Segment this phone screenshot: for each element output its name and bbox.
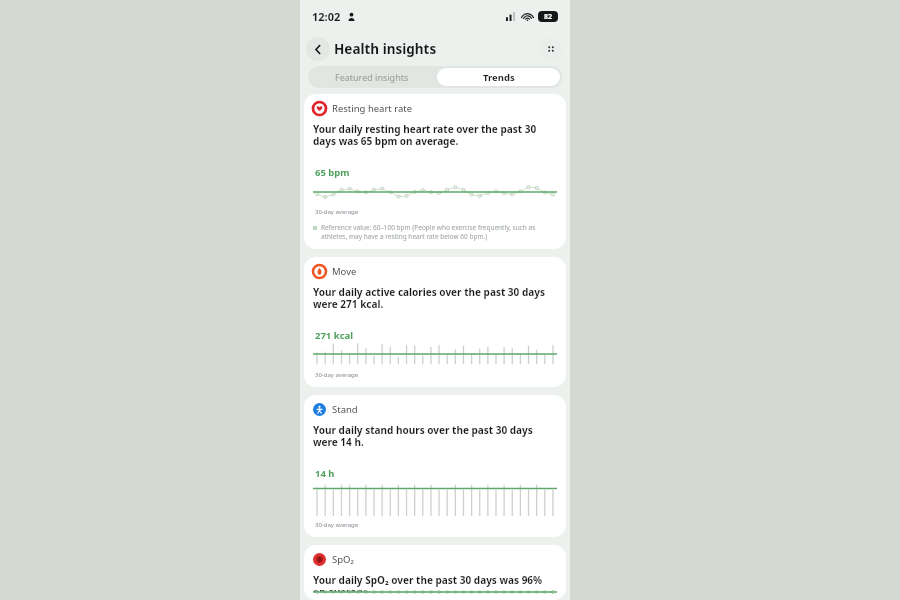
button[interactable]: More options [540, 38, 562, 60]
staticText: Move [332, 265, 357, 278]
staticText: Trends [483, 71, 515, 84]
button[interactable]: Stand [304, 395, 566, 537]
staticText: Your daily stand hours over the past 30 … [313, 423, 557, 449]
button[interactable]: Move [304, 257, 566, 387]
staticText: 82 [544, 12, 553, 22]
staticText: 65 bpm [315, 166, 350, 179]
staticText: 271 kcal [315, 329, 354, 342]
staticText: 30-day average [315, 521, 359, 529]
staticText: 12:02 [312, 9, 341, 24]
staticText: Your daily active calories over the past… [313, 285, 557, 311]
button[interactable]: Featured insights [308, 66, 435, 88]
staticText: 14 h [315, 467, 335, 480]
button[interactable]: Back [306, 37, 330, 61]
staticText: Your daily SpO₂ over the past 30 days wa… [313, 573, 557, 592]
staticText: Resting heart rate [332, 102, 413, 115]
button[interactable]: SpO₂ [304, 545, 566, 600]
staticText: Stand [332, 403, 358, 416]
button[interactable]: Trends [437, 68, 560, 86]
staticText: Your daily resting heart rate over the p… [313, 122, 557, 148]
staticText: SpO₂ [332, 553, 354, 566]
staticText: Featured insights [335, 71, 409, 83]
staticText: Health insights [334, 40, 437, 58]
staticText: 30-day average [315, 208, 359, 216]
staticText: Reference value: 60–100 bpm (People who … [321, 223, 557, 241]
staticText: 30-day average [315, 371, 359, 379]
button[interactable]: Resting heart rate [304, 94, 566, 249]
